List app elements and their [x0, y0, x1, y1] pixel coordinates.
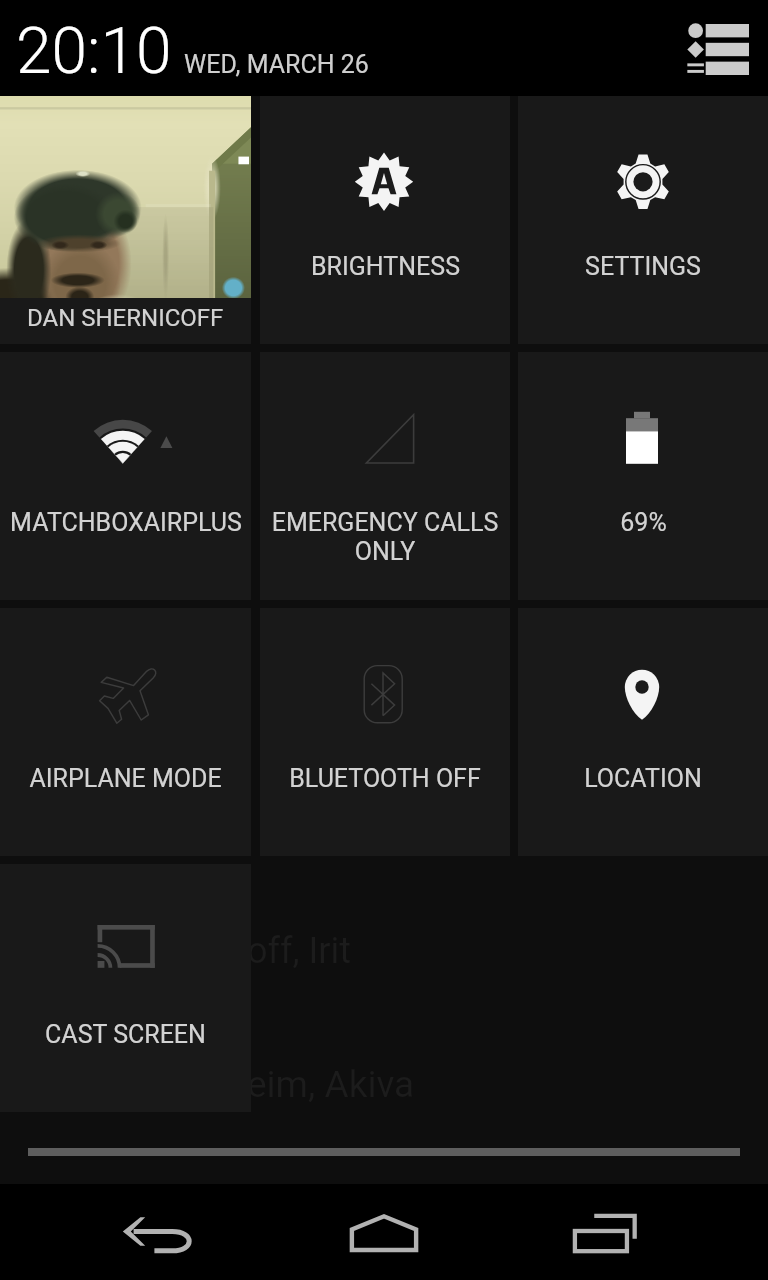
button[interactable]: DAN SHERNICOFF — [0, 96, 251, 344]
button[interactable]: AIRPLANE MODE — [0, 608, 251, 856]
staticText: DAN SHERNICOFF — [27, 304, 224, 332]
staticText: EMERGENCY CALLS ONLY — [266, 508, 504, 566]
staticText: 20:10 — [16, 14, 172, 89]
button[interactable]: 69% — [518, 352, 768, 600]
button[interactable]: BLUETOOTH OFF — [260, 608, 510, 856]
staticText: MATCHBOXAIRPLUS — [10, 508, 242, 537]
button[interactable]: MATCHBOXAIRPLUS — [0, 352, 251, 600]
button[interactable]: Recents — [512, 1184, 768, 1280]
staticText: CAST SCREEN — [45, 1020, 206, 1049]
staticText: eim, Akiva — [247, 1063, 415, 1106]
staticText: LOCATION — [584, 764, 702, 793]
staticText: 69% — [620, 508, 667, 537]
button[interactable]: CAST SCREEN — [0, 864, 251, 1112]
button[interactable]: LOCATION — [518, 608, 768, 856]
button[interactable]: Back — [0, 1184, 256, 1280]
staticText: off, Irit — [247, 930, 352, 972]
staticText: BRIGHTNESS — [311, 252, 460, 281]
staticText: SETTINGS — [585, 252, 701, 281]
button[interactable]: SETTINGS — [518, 96, 768, 344]
button[interactable]: BRIGHTNESS — [260, 96, 510, 344]
staticText: BLUETOOTH OFF — [289, 764, 481, 793]
staticText: WED, MARCH 26 — [184, 50, 369, 79]
button[interactable]: EMERGENCY CALLS ONLY — [260, 352, 510, 600]
button[interactable]: Notifications — [688, 24, 749, 75]
button[interactable]: Home — [256, 1184, 512, 1280]
staticText: AIRPLANE MODE — [29, 764, 222, 793]
